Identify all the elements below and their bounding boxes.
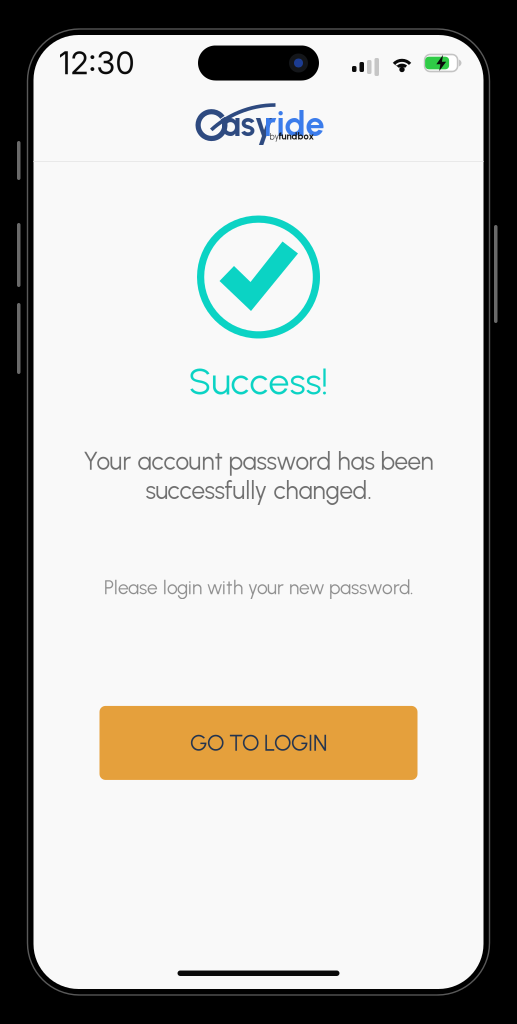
staticText: successfully changed. [145,476,371,505]
staticText: fundbox [278,131,314,142]
staticText: Your account password has been [83,447,433,476]
staticText: GO TO LOGIN [190,729,327,756]
staticText: Success! [188,359,328,404]
button[interactable]: GO TO LOGIN [99,706,417,780]
staticText: 12:30 [58,44,134,81]
staticText: by [269,132,278,142]
staticText: Please login with your new password. [104,576,413,599]
staticText: ride [263,104,324,144]
staticText: asy [220,104,273,144]
